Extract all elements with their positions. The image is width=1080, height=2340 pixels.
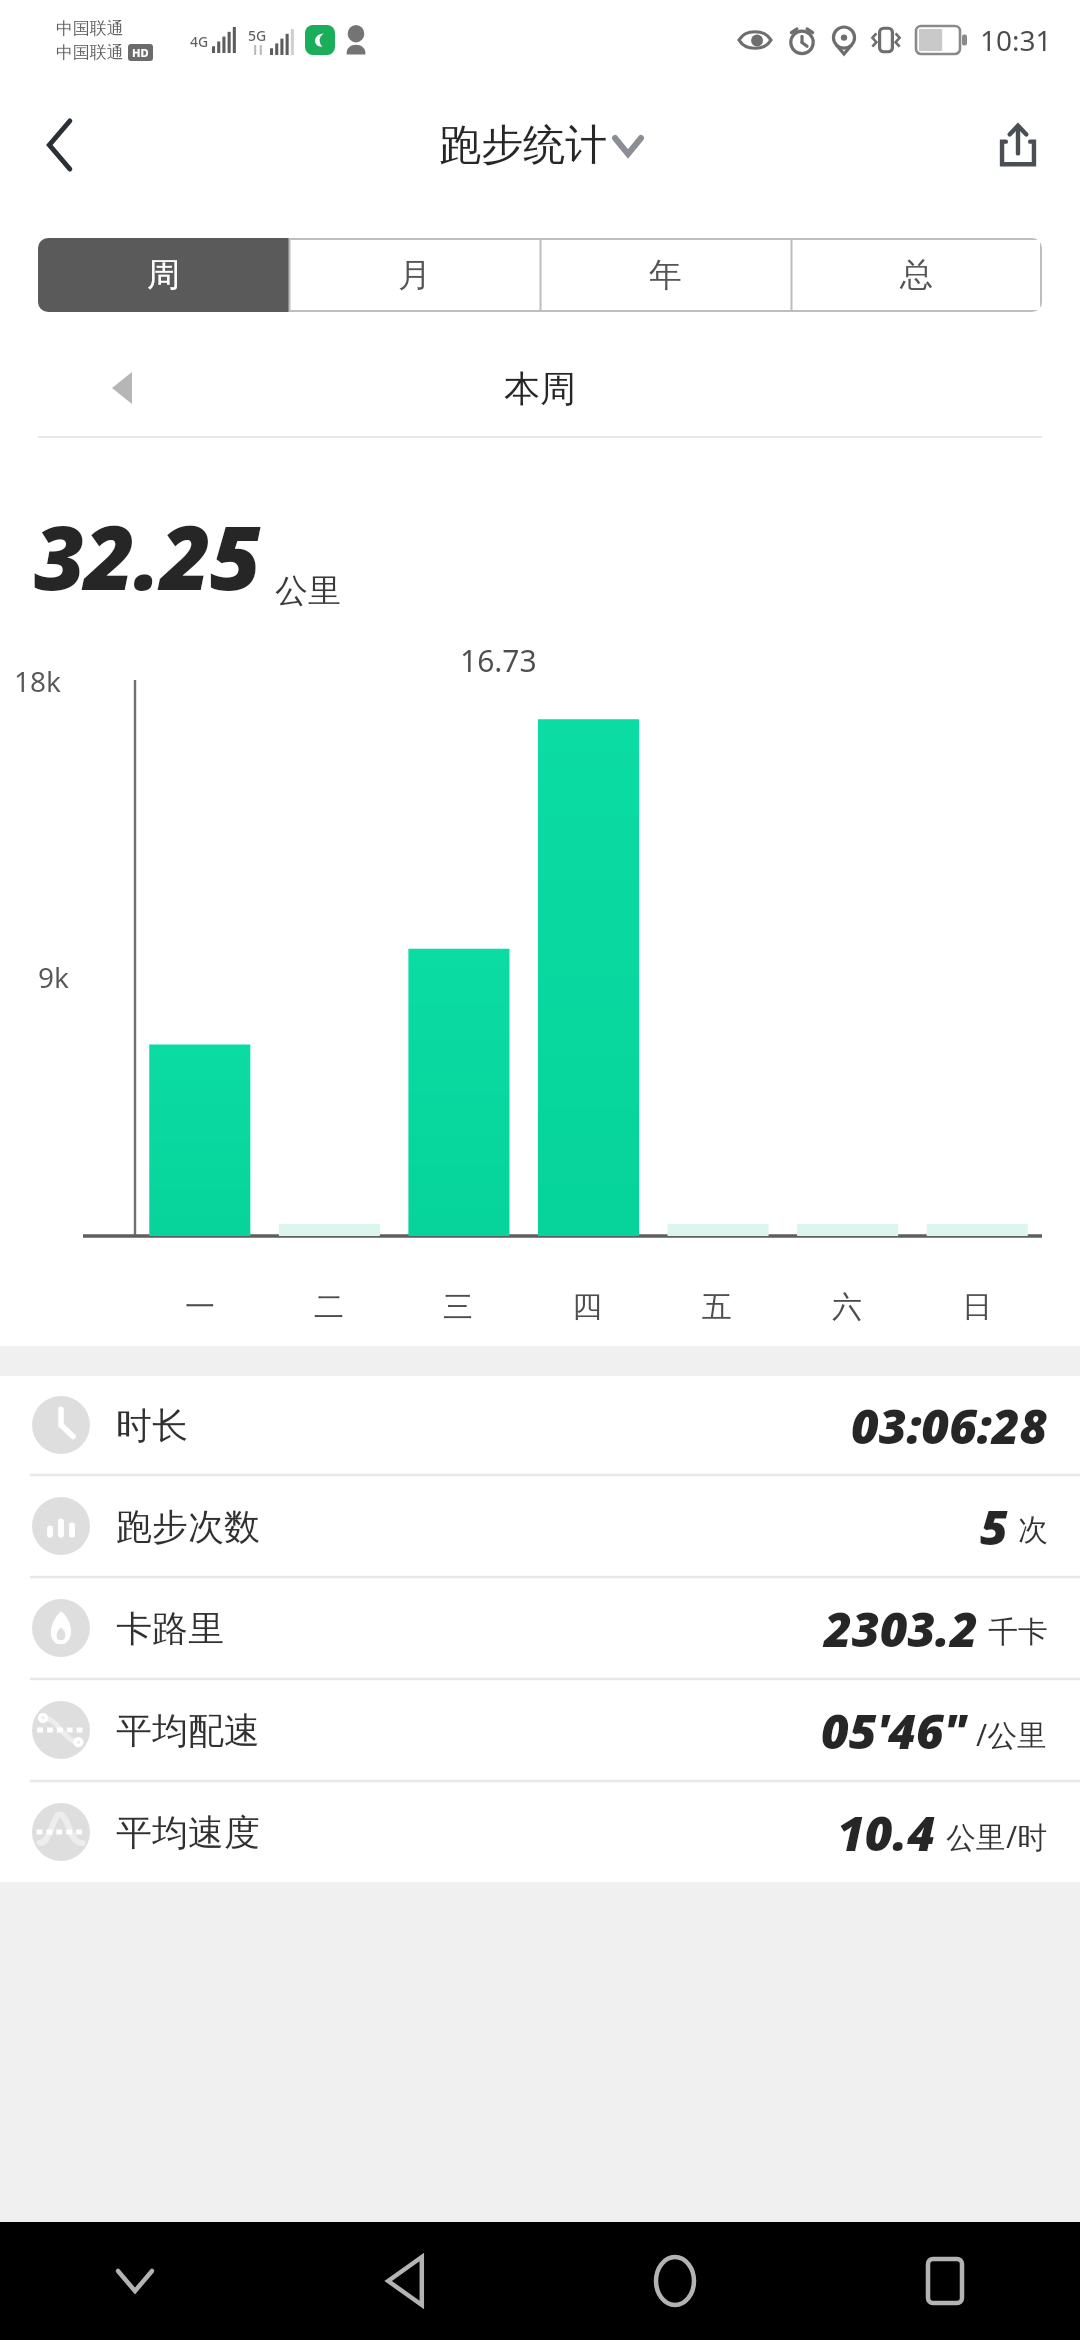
button[interactable]: 跑步统计 [439,119,641,172]
staticText: 卡路里 [116,1606,224,1651]
button[interactable]: 跑步次数 [0,1476,1080,1576]
button[interactable]: 最近任务 [810,2222,1080,2340]
button[interactable]: 平均配速 [0,1680,1080,1780]
button[interactable]: 上一周 [88,354,156,422]
staticText: 平均配速 [116,1708,260,1753]
staticText: 平均速度 [116,1810,260,1855]
button[interactable]: 返回 [20,105,100,185]
staticText: 四 [572,1288,602,1326]
staticText: 10:31 [980,21,1052,59]
staticText: 2303.2 [824,1596,978,1661]
staticText: 32.25 [34,496,261,616]
staticText: 中国联通 [56,42,124,63]
staticText: 本周 [504,366,576,411]
button[interactable]: 总 [791,238,1042,312]
staticText: 月 [398,254,431,296]
staticText: 5 [980,1494,1008,1559]
staticText: 二 [314,1288,344,1326]
staticText: 跑步次数 [116,1504,260,1549]
staticText: 16.73 [460,640,537,681]
staticText: 三 [443,1288,473,1326]
staticText: HD [132,45,149,60]
button[interactable]: 主屏幕 [540,2222,810,2340]
staticText: 周 [147,254,180,296]
button[interactable]: 返回 [270,2222,540,2340]
staticText: 日 [962,1288,992,1326]
staticText: 公里/时 [946,1816,1048,1857]
staticText: 年 [649,254,682,296]
staticText: 次 [1018,1511,1048,1549]
staticText: 03:06:28 [851,1393,1048,1458]
staticText: 总 [900,254,933,296]
button[interactable]: 月 [289,238,540,312]
staticText: 4G [190,32,209,51]
staticText: /公里 [976,1714,1048,1755]
staticText: 五 [702,1288,732,1326]
staticText: 9k [38,958,69,996]
staticText: 跑步统计 [439,119,607,172]
staticText: 时长 [116,1403,188,1448]
button[interactable]: 时长 [0,1376,1080,1474]
staticText: 05'46" [821,1698,966,1763]
button[interactable]: 周 [38,238,289,312]
button[interactable]: 收起键盘 [0,2222,270,2340]
staticText: 中国联通 [56,18,124,39]
staticText: 5G [248,26,267,45]
button[interactable]: 分享 [978,105,1058,185]
staticText: 六 [832,1288,862,1326]
staticText: 千卡 [988,1613,1048,1651]
button[interactable]: 年 [540,238,791,312]
staticText: 公里 [275,570,341,612]
staticText: 一 [185,1288,215,1326]
staticText: 10.4 [837,1800,936,1865]
staticText: 18k [14,662,61,700]
button[interactable]: 平均速度 [0,1782,1080,1882]
button[interactable]: 卡路里 [0,1578,1080,1678]
